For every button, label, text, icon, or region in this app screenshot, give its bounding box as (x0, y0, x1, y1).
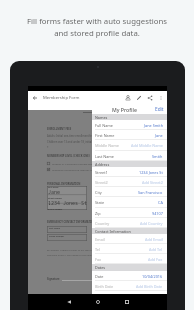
staticText: Smith (152, 154, 163, 159)
button[interactable]: Recents (121, 294, 133, 310)
staticText: Tel (95, 247, 100, 252)
button[interactable]: Zip (92, 208, 167, 218)
staticText: Date (95, 274, 104, 279)
staticText: 1234 Jones St (139, 170, 163, 175)
staticText: Add Fax (148, 257, 163, 262)
staticText: EMERGENCY CONTACT INFORMATION (47, 220, 92, 224)
staticText: Zip (95, 211, 101, 216)
staticText: 10/04/2016 (142, 274, 163, 279)
button[interactable]: More options (155, 91, 166, 104)
button[interactable]: First Name (92, 130, 167, 140)
staticText: Street2 (95, 180, 108, 185)
staticText: Birth Date (95, 284, 114, 289)
staticText: Dates (95, 265, 106, 270)
staticText: My Profile (112, 106, 137, 113)
staticText: Add Street2 (142, 180, 163, 185)
staticText: State (95, 200, 105, 205)
button[interactable]: Country (92, 218, 167, 228)
staticText: PERSONAL INFORMATION (47, 182, 81, 186)
staticText: 1234 Jones St. (48, 200, 87, 207)
staticText: MEMBERSHIP LEVEL (CHECK ONE) (47, 154, 90, 158)
button[interactable]: Back (28, 91, 41, 104)
staticText: Full Name (95, 123, 113, 128)
staticText: Phone Number (49, 235, 65, 238)
staticText: Address (95, 162, 110, 167)
button[interactable]: Street1 (92, 167, 167, 177)
button[interactable]: Edit (155, 106, 164, 113)
staticText: Children over 13 and under 18, initial e… (47, 140, 92, 144)
button[interactable]: Back (63, 294, 75, 310)
staticText: visitation hours. I also agree to the li… (47, 253, 92, 256)
button[interactable]: Home (92, 294, 104, 310)
staticText: Middle Name (95, 143, 119, 148)
button[interactable]: Profile (122, 91, 133, 104)
staticText: Contact Information (95, 229, 131, 234)
staticText: Street Address (48, 197, 62, 200)
staticText: Country (95, 221, 110, 226)
button[interactable]: Email (92, 234, 167, 244)
button[interactable]: Edit (133, 91, 144, 104)
staticText: Add Country (140, 221, 163, 226)
staticText: Names (95, 115, 108, 120)
staticText: CA (158, 200, 163, 205)
staticText: First Name (48, 186, 59, 189)
staticText: First Name (95, 133, 115, 138)
staticText: * (47, 146, 49, 150)
staticText: ENROLLMENT FEES (47, 127, 72, 131)
button[interactable]: City (92, 187, 167, 197)
staticText: Add Tel (149, 247, 163, 252)
staticText: Add Email (145, 237, 163, 242)
button[interactable]: Date (92, 271, 167, 281)
staticText: Email (95, 237, 105, 242)
staticText: Student or Corporate membership (identit… (52, 162, 92, 165)
staticText: Street1 (95, 170, 108, 175)
button[interactable]: Middle Name (92, 140, 167, 151)
staticText: Last Name (95, 154, 115, 159)
button[interactable]: Full Name (92, 120, 167, 130)
button[interactable]: Fax (92, 254, 167, 264)
button[interactable]: Last Name (92, 151, 167, 161)
button[interactable]: Birth Date (92, 281, 167, 291)
button[interactable]: Share (144, 91, 155, 104)
staticText: Fax (95, 257, 102, 262)
staticText: City (95, 190, 102, 195)
staticText: San Francisco (138, 190, 163, 195)
staticText: Jane (155, 133, 163, 138)
staticText: Add Middle Name (131, 143, 163, 148)
button[interactable]: State (92, 197, 167, 208)
staticText: By signing, I agree to enter at my own r… (47, 248, 92, 251)
button[interactable]: Street2 (92, 177, 167, 187)
staticText: Membership Form (43, 95, 80, 101)
staticText: Phone Number (48, 208, 63, 210)
staticText: Edit (155, 106, 164, 113)
staticText: Jane Smith (144, 123, 163, 128)
staticText: First Name (49, 227, 60, 230)
staticText: Signature (47, 277, 60, 281)
staticText: Jane (48, 189, 61, 196)
staticText: Fill forms faster with auto suggestions … (0, 16, 194, 38)
staticText: Adults: Initial one-time enrollment fee … (47, 134, 92, 138)
staticText: Individual membership (identity required… (52, 168, 92, 171)
staticText: Add Birth Date (136, 284, 163, 289)
staticText: 94107 (152, 211, 163, 216)
button[interactable]: Tel (92, 244, 167, 254)
